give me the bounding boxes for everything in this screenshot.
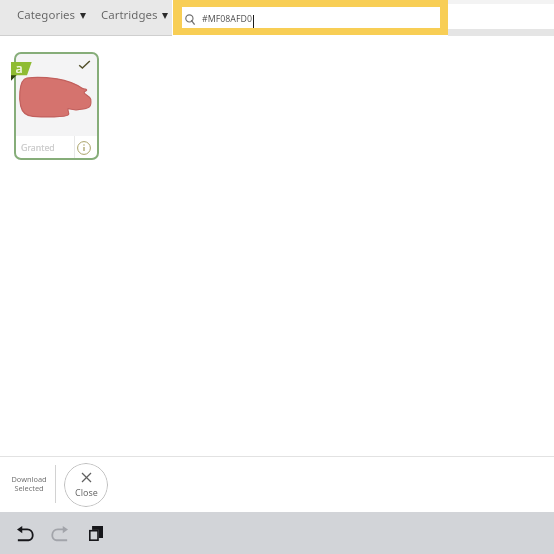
- staticText: Categories: [17, 7, 76, 23]
- staticText: Cartridges: [101, 7, 158, 23]
- staticText: #MF08AFD0: [202, 13, 252, 25]
- staticText: a: [11, 60, 27, 77]
- button[interactable]: Categories: [17, 0, 86, 29]
- button[interactable]: #MF08AFD0: [182, 7, 440, 28]
- button[interactable]: Download Selected: [4, 456, 54, 512]
- button[interactable]: Back: [12, 520, 39, 547]
- staticText: Granted: [21, 142, 55, 154]
- button[interactable]: Recent apps: [82, 520, 109, 547]
- button[interactable]: Redo: [46, 520, 73, 547]
- button[interactable]: Close: [64, 463, 108, 507]
- staticText: Close: [75, 486, 98, 498]
- button[interactable]: Granted: [14, 52, 99, 160]
- button[interactable]: Cartridges: [101, 0, 168, 29]
- button[interactable]: Info: [77, 141, 91, 155]
- staticText: Download Selected: [11, 474, 47, 494]
